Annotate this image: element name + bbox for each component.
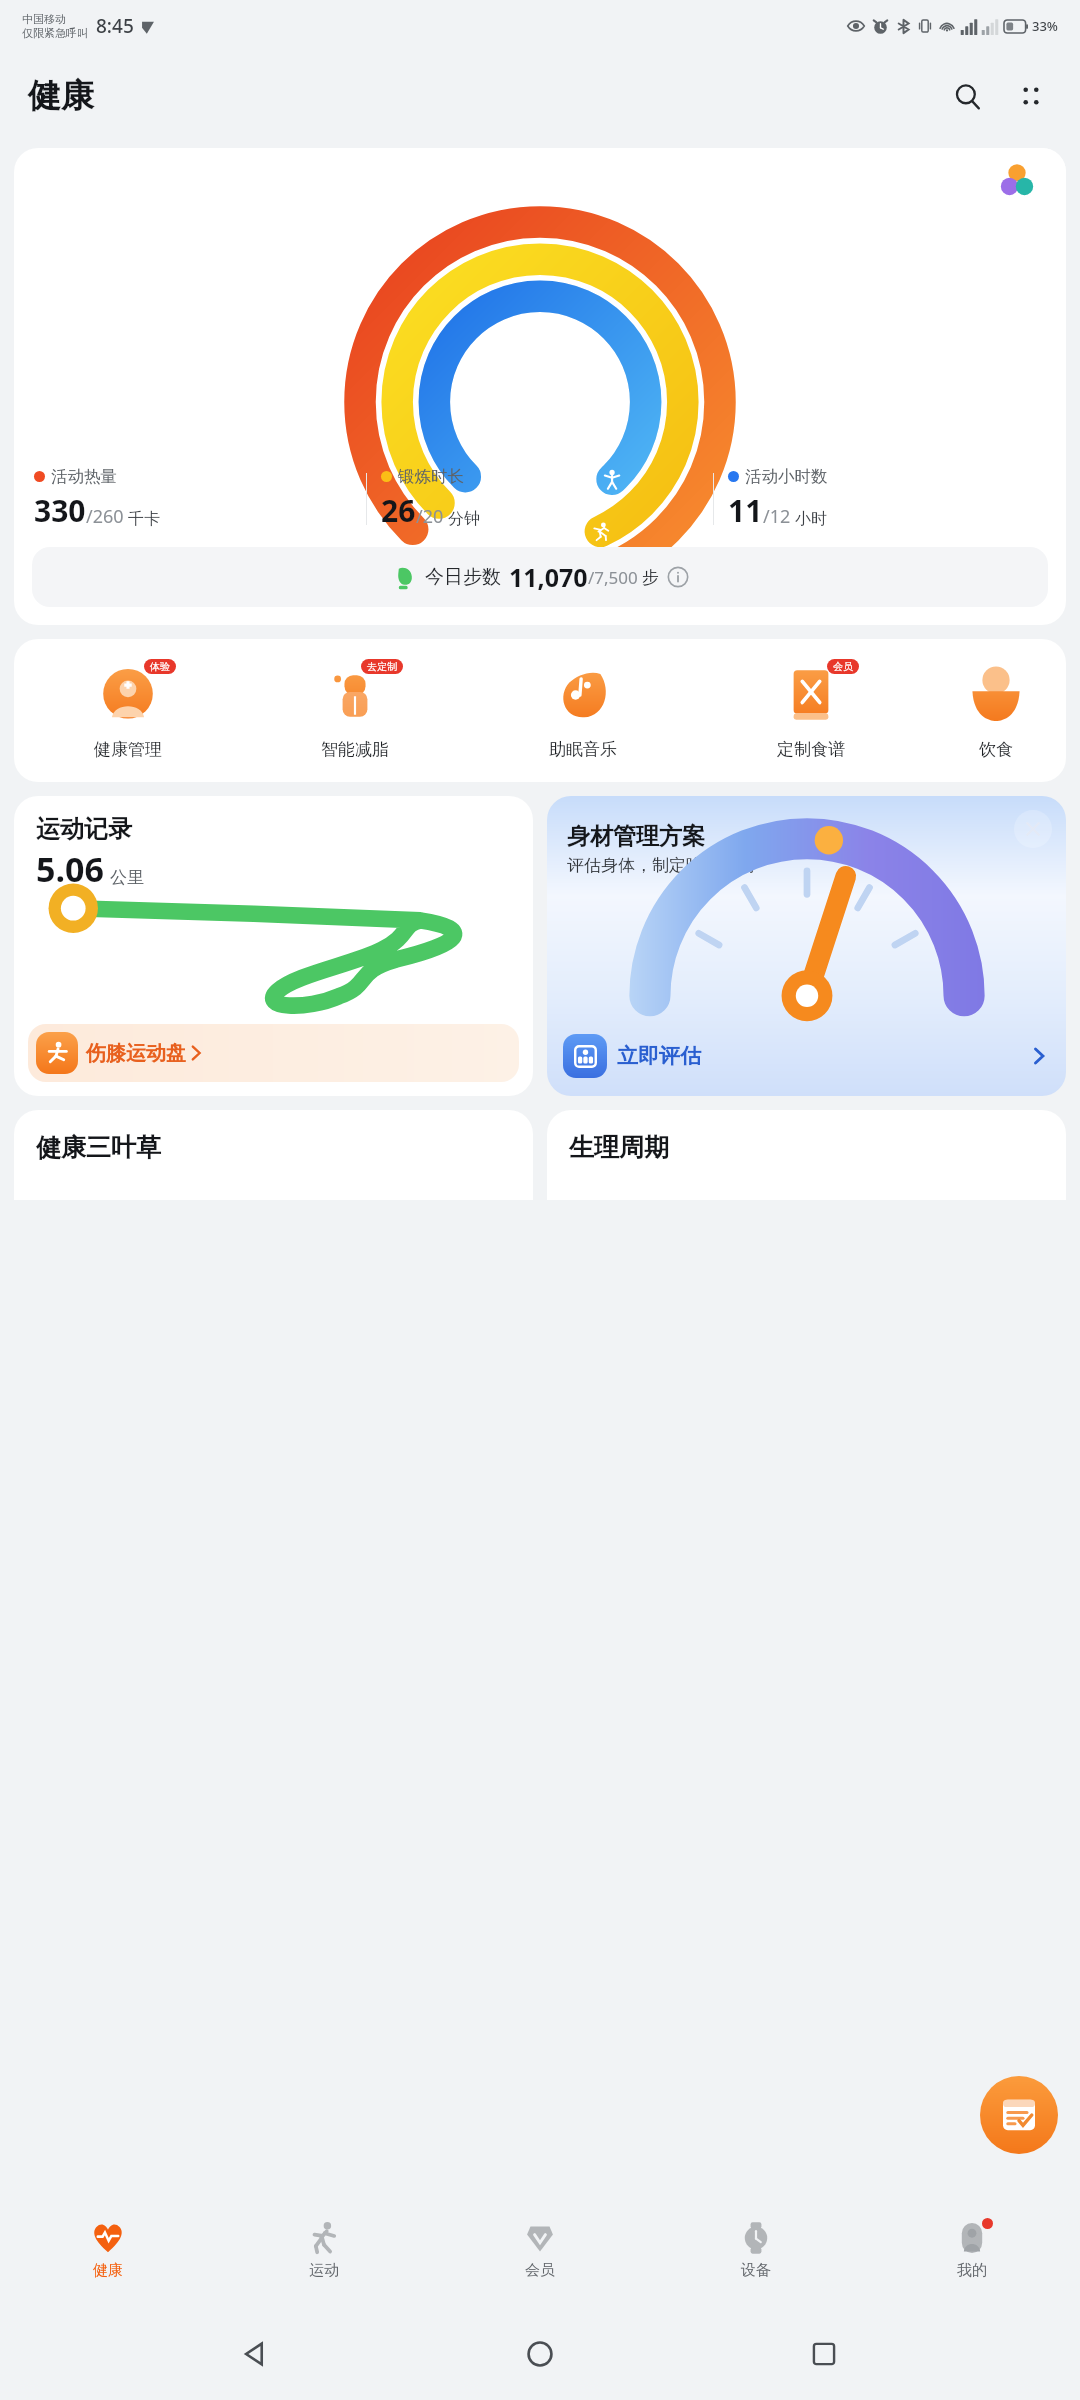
staticText: 健康: [28, 75, 94, 117]
staticText: 33%: [1032, 17, 1058, 35]
button[interactable]: 会员: [697, 661, 925, 760]
staticText: 仅限紧急呼叫: [22, 26, 88, 40]
button[interactable]: 助眠音乐: [469, 661, 697, 760]
button[interactable]: 饮食: [925, 661, 1066, 760]
staticText: 会员: [833, 660, 853, 673]
staticText: 助眠音乐: [549, 739, 617, 760]
button[interactable]: Search: [942, 71, 992, 121]
button[interactable]: 健康三叶草: [14, 1110, 533, 1200]
button[interactable]: 生理周期: [547, 1110, 1066, 1200]
staticText: 会员: [525, 2261, 555, 2280]
staticText: /260: [86, 504, 124, 529]
staticText: 26: [381, 490, 416, 531]
staticText: 运动记录: [36, 814, 132, 844]
button[interactable]: Recents: [796, 2326, 852, 2382]
staticText: 分钟: [448, 509, 480, 529]
staticText: 去定制: [367, 660, 397, 673]
staticText: /20: [416, 504, 444, 529]
staticText: 今日步数: [425, 565, 501, 589]
button[interactable]: Back: [228, 2326, 284, 2382]
button[interactable]: 健康: [0, 2190, 216, 2308]
staticText: 我的: [957, 2261, 987, 2280]
button[interactable]: 活动热量: [14, 148, 1066, 625]
button[interactable]: 会员: [432, 2190, 648, 2308]
staticText: 体验: [150, 660, 170, 673]
button[interactable]: 去定制: [241, 661, 469, 760]
staticText: 公里: [110, 867, 144, 888]
staticText: 健康管理: [94, 739, 162, 760]
staticText: 活动小时数: [745, 466, 828, 487]
staticText: 运动: [309, 2261, 339, 2280]
staticText: 定制食谱: [777, 739, 845, 760]
staticText: /7,500: [588, 566, 638, 589]
staticText: 评估身体，制定吃练计划: [567, 855, 754, 876]
staticText: 立即评估: [617, 1043, 701, 1069]
staticText: 健康: [93, 2261, 123, 2280]
staticText: 身材管理方案: [567, 822, 705, 851]
button[interactable]: 运动记录: [14, 796, 533, 1096]
staticText: 活动热量: [51, 466, 117, 487]
staticText: 饮食: [979, 739, 1013, 760]
staticText: 5.06: [36, 846, 104, 892]
staticText: 小时: [795, 509, 827, 529]
staticText: 设备: [741, 2261, 771, 2280]
staticText: 330: [34, 490, 86, 531]
staticText: 11,070: [509, 560, 588, 594]
button[interactable]: 运动: [216, 2190, 432, 2308]
staticText: 千卡: [128, 509, 160, 529]
staticText: 步: [642, 567, 659, 588]
staticText: 智能减脂: [321, 739, 389, 760]
button[interactable]: 体验: [14, 661, 241, 760]
button[interactable]: 身材管理方案: [547, 796, 1066, 1096]
button[interactable]: 今日步数: [32, 547, 1048, 607]
button[interactable]: Health data sharing: [968, 148, 1066, 212]
staticText: 伤膝运动盘: [86, 1041, 186, 1066]
button[interactable]: Home: [512, 2326, 568, 2382]
button[interactable]: 设备: [648, 2190, 864, 2308]
button[interactable]: Close: [1014, 810, 1052, 848]
staticText: 11: [728, 490, 763, 531]
staticText: /12: [763, 504, 791, 529]
staticText: 生理周期: [569, 1132, 669, 1163]
staticText: 8:45: [96, 13, 134, 39]
button[interactable]: 伤膝运动盘: [28, 1024, 519, 1082]
staticText: 健康三叶草: [36, 1132, 161, 1163]
button[interactable]: Add record: [980, 2076, 1058, 2154]
button[interactable]: 我的: [864, 2190, 1080, 2308]
button[interactable]: More options: [1006, 71, 1056, 121]
staticText: 锻炼时长: [398, 466, 464, 487]
staticText: 中国移动: [22, 12, 66, 26]
